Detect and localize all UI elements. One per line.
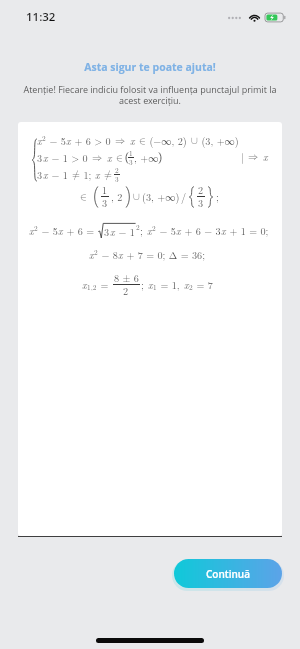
staticText: 2 [152,223,156,233]
staticText: 3 [198,196,204,210]
staticText: 3 [104,225,110,239]
staticText: ∈ [116,153,123,163]
staticText: − 5 [38,224,58,238]
staticText: ⇒ [115,136,126,146]
staticText: 8 ± 6 [114,271,139,285]
staticText: Atenție! Fiecare indiciu folosit va infl… [8,83,292,106]
staticText: 2 [123,284,129,298]
staticText: 2 [136,222,140,232]
staticText: x [263,150,268,164]
staticText: x [184,278,189,292]
staticText: , 2 [111,190,123,204]
staticText: ≠ [104,170,112,180]
staticText: 2 [94,247,98,257]
staticText: 3 [102,196,108,210]
staticText: ∈ [139,136,146,146]
staticText: x [221,224,226,238]
staticText: ⇒ [92,153,103,163]
staticText: x [37,134,42,148]
staticText: ; [141,278,148,292]
staticText: − 8 [98,248,118,262]
staticText: x [82,278,87,292]
staticText: x [176,224,181,238]
button[interactable]: Continuă [174,559,282,588]
staticText: 2 [189,282,193,292]
staticText: 1; [80,168,95,182]
staticText: x [43,168,48,182]
staticText: = [97,278,112,292]
staticText: x [107,151,112,165]
staticText: 1 [153,282,157,292]
staticText: | [241,150,248,164]
staticText: (−∞, 2) [146,134,191,148]
staticText: 2 [42,133,46,143]
staticText: ∈ [80,192,87,202]
staticText: 3 [129,157,133,167]
staticText: ∪ [133,192,140,202]
staticText: − 1 [115,225,135,239]
staticText: (3, +∞) [198,134,239,148]
staticText: 3 [37,151,43,165]
staticText: x [110,225,115,239]
staticText: Continuă [206,567,251,581]
staticText: ∪ [191,136,198,146]
staticText: − 1 > 0 [48,151,92,165]
staticText: x [58,224,63,238]
staticText: / [181,190,187,204]
staticText: , +∞ [134,151,159,165]
staticText: − 5 [46,134,66,148]
staticText: x [66,134,71,148]
staticText: x [147,224,152,238]
staticText: = 1, [157,278,184,292]
staticText: 3 [115,174,119,184]
staticText: 2 [34,223,38,233]
staticText: x [130,134,135,148]
staticText: + 1 = 0; [226,224,269,238]
staticText: 2 [198,183,204,197]
staticText: x [95,168,100,182]
staticText: = 7 [193,278,213,292]
staticText: 3 [37,168,43,182]
staticText: x [29,224,34,238]
staticText: ≠ [72,170,80,180]
staticText: x [89,248,94,262]
staticText: + 6 − 3 [181,224,221,238]
staticText: + 6 > 0 [71,134,115,148]
staticText: Asta sigur te poate ajuta! [0,60,300,74]
staticText: 1,2 [87,282,97,292]
staticText: (3, +∞) [142,190,180,204]
staticText: + 6 = [63,224,98,238]
staticText: ; [216,190,219,204]
staticText: x [118,248,123,262]
staticText: 1 [129,148,133,158]
staticText: − 5 [156,224,176,238]
staticText: x [43,151,48,165]
staticText: − 1 [48,168,72,182]
staticText: + 7 = 0; Δ = 36; [123,248,206,262]
staticText: ; [140,224,147,238]
staticText: x [148,278,153,292]
staticText: 1 [102,183,108,197]
staticText: 11:32 [26,9,56,25]
staticText: ⇒ [248,152,259,162]
staticText: 2 [115,165,119,175]
